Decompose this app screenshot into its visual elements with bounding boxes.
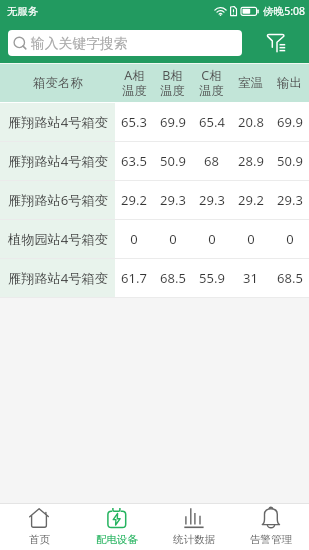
staticText: B相 温度	[160, 67, 185, 99]
staticText: 31	[243, 269, 258, 287]
button[interactable]: 告警管理	[232, 504, 309, 550]
staticText: 输出	[277, 75, 302, 91]
staticText: 雁翔路站6号箱变	[8, 191, 108, 209]
staticText: 29.3	[199, 191, 225, 209]
staticText: 68.5	[160, 269, 186, 287]
staticText: 雁翔路站4号箱变	[8, 152, 108, 170]
staticText: C相 温度	[199, 67, 224, 99]
staticText: 20.8	[238, 113, 264, 131]
staticText: 0	[208, 230, 216, 248]
staticText: 雁翔路站4号箱变	[8, 269, 108, 287]
staticText: 29.2	[238, 191, 264, 209]
staticText: 首页	[29, 533, 50, 546]
staticText: 告警管理	[250, 533, 292, 546]
staticText: 50.9	[160, 152, 186, 170]
button[interactable]: 筛选	[242, 22, 309, 63]
staticText: 69.9	[277, 113, 303, 131]
staticText: A相 温度	[122, 67, 147, 99]
staticText: 箱变名称	[33, 75, 83, 91]
staticText: 29.3	[277, 191, 303, 209]
button[interactable]: 统计数据	[155, 504, 232, 550]
staticText: 63.5	[121, 152, 147, 170]
button[interactable]: 首页	[0, 504, 78, 550]
staticText: 29.2	[121, 191, 147, 209]
staticText: 输入关键字搜索	[31, 35, 128, 52]
staticText: 统计数据	[173, 533, 215, 546]
button[interactable]: 雁翔路站4号箱变	[0, 103, 309, 141]
button[interactable]: 雁翔路站4号箱变	[0, 259, 309, 297]
staticText: 55.9	[199, 269, 225, 287]
staticText: 68	[204, 152, 219, 170]
button[interactable]: 植物园站4号箱变	[0, 220, 309, 258]
staticText: 50.9	[277, 152, 303, 170]
staticText: 室温	[238, 75, 263, 91]
staticText: 29.3	[160, 191, 186, 209]
staticText: 雁翔路站4号箱变	[8, 113, 108, 131]
staticText: 0	[169, 230, 177, 248]
staticText: 61.7	[121, 269, 147, 287]
staticText: 0	[130, 230, 138, 248]
staticText: 65.4	[199, 113, 225, 131]
staticText: 68.5	[277, 269, 303, 287]
button[interactable]: 配电设备	[78, 504, 155, 550]
staticText: 65.3	[121, 113, 147, 131]
button[interactable]: 雁翔路站4号箱变	[0, 142, 309, 180]
staticText: 28.9	[238, 152, 264, 170]
staticText: 69.9	[160, 113, 186, 131]
staticText: 傍晚5:08	[263, 4, 305, 18]
staticText: 无服务	[7, 5, 39, 18]
button[interactable]: 输入关键字搜索	[8, 30, 242, 56]
staticText: 配电设备	[96, 533, 138, 546]
staticText: 0	[247, 230, 255, 248]
button[interactable]: 雁翔路站6号箱变	[0, 181, 309, 219]
staticText: 0	[286, 230, 294, 248]
staticText: 植物园站4号箱变	[8, 230, 108, 248]
